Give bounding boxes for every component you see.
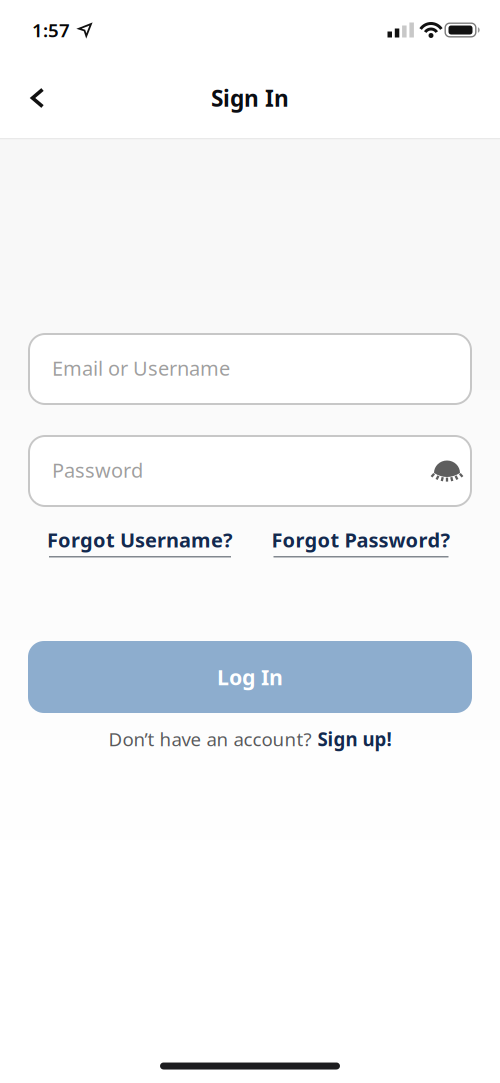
staticText: 1:57 xyxy=(32,18,70,42)
button[interactable] xyxy=(425,451,469,489)
staticText: Password xyxy=(52,457,143,483)
staticText: Log In xyxy=(217,663,283,691)
staticText: Don’t have an account? xyxy=(108,727,311,751)
button[interactable]: Forgot Username? xyxy=(43,523,237,561)
button[interactable]: Sign up! xyxy=(317,727,391,751)
staticText: Forgot Username? xyxy=(47,527,233,553)
button[interactable] xyxy=(17,76,56,119)
button[interactable]: Password xyxy=(28,435,472,507)
staticText: Email or Username xyxy=(52,355,230,381)
staticText: Forgot Password? xyxy=(271,527,450,553)
button[interactable]: Log In xyxy=(28,641,472,713)
button[interactable]: Forgot Password? xyxy=(267,523,454,561)
staticText: Sign up! xyxy=(317,727,391,751)
button[interactable]: Email or Username xyxy=(28,333,472,405)
staticText: Sign In xyxy=(211,83,289,113)
